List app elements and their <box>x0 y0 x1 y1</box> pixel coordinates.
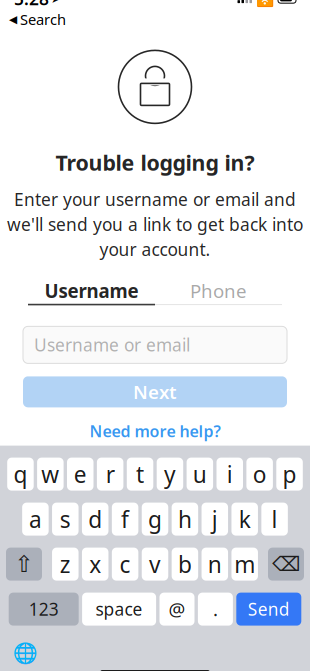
staticText: d <box>88 504 102 534</box>
button[interactable]: n <box>202 548 228 581</box>
staticText: Phone <box>190 278 247 303</box>
staticText: your account. <box>99 238 210 261</box>
staticText: 🌐 <box>12 642 37 665</box>
staticText: b <box>178 549 192 579</box>
staticText: 🛜 <box>256 0 274 7</box>
staticText: p <box>283 459 297 489</box>
staticText: Username or email <box>34 333 190 356</box>
staticText: ⇧ <box>14 551 33 577</box>
staticText: o <box>253 459 267 489</box>
button[interactable]: h <box>172 503 198 536</box>
staticText: Send <box>248 598 290 621</box>
staticText: f <box>121 504 129 534</box>
button[interactable]: p <box>276 458 303 491</box>
button[interactable]: w <box>37 458 64 491</box>
staticText: 5:28 <box>14 0 49 10</box>
button[interactable]: Send <box>236 593 301 626</box>
button[interactable]: Username <box>28 278 155 304</box>
staticText: ⌫ <box>272 553 300 575</box>
button[interactable]: k <box>231 503 258 536</box>
staticText: u <box>193 459 207 489</box>
staticText: j <box>212 504 218 534</box>
button[interactable]: Next <box>23 376 287 407</box>
staticText: v <box>149 549 161 579</box>
staticText: Trouble logging in? <box>55 148 254 177</box>
button[interactable]: space <box>82 593 156 626</box>
staticText: 123 <box>29 598 59 621</box>
button[interactable]: s <box>52 503 79 536</box>
button[interactable]: b <box>172 548 198 581</box>
staticText: a <box>29 504 42 534</box>
button[interactable]: f <box>112 503 138 536</box>
button[interactable]: e <box>67 458 93 491</box>
button[interactable]: a <box>22 503 49 536</box>
staticText: y <box>164 459 176 489</box>
staticText: h <box>178 504 192 534</box>
staticText: c <box>120 549 131 579</box>
staticText: ◀ <box>9 13 17 25</box>
button[interactable]: Delete <box>268 548 304 581</box>
staticText: Need more help? <box>89 420 220 442</box>
staticText: g <box>148 504 162 534</box>
staticText: . <box>213 597 218 621</box>
staticText: Username <box>44 278 138 303</box>
staticText: z <box>60 549 71 579</box>
staticText: x <box>89 549 101 579</box>
button[interactable]: . <box>198 593 233 626</box>
button[interactable]: l <box>261 503 288 536</box>
staticText: m <box>234 549 255 579</box>
staticText: Search <box>20 10 66 29</box>
button[interactable]: Shift <box>6 548 42 581</box>
staticText: s <box>60 504 71 534</box>
staticText: @ <box>168 597 185 621</box>
staticText: we'll send you a link to get back into <box>7 213 303 236</box>
button[interactable]: d <box>82 503 108 536</box>
staticText: Enter your username or email and <box>14 188 296 211</box>
button[interactable]: r <box>97 458 123 491</box>
staticText: l <box>272 504 278 534</box>
button[interactable]: Phone <box>155 278 282 304</box>
button[interactable]: j <box>202 503 228 536</box>
button[interactable]: m <box>231 548 258 581</box>
button[interactable]: t <box>127 458 153 491</box>
button[interactable]: v <box>142 548 168 581</box>
button[interactable]: o <box>246 458 273 491</box>
staticText: n <box>208 549 222 579</box>
staticText: ➤ <box>51 0 61 5</box>
button[interactable]: g <box>142 503 168 536</box>
button[interactable]: @ <box>159 593 194 626</box>
button[interactable]: y <box>157 458 183 491</box>
button[interactable]: z <box>52 548 78 581</box>
button[interactable]: u <box>187 458 213 491</box>
button[interactable]: 123 <box>9 593 79 626</box>
staticText: space <box>96 598 143 621</box>
button[interactable]: q <box>7 458 34 491</box>
staticText: q <box>13 459 27 489</box>
button[interactable]: i <box>216 458 243 491</box>
button[interactable]: Username or email <box>23 326 287 363</box>
button[interactable]: Need more help? <box>79 416 230 446</box>
staticText: Next <box>133 379 177 404</box>
button[interactable]: x <box>82 548 108 581</box>
staticText: t <box>136 459 144 489</box>
staticText: w <box>41 459 59 489</box>
staticText: k <box>239 504 251 534</box>
button[interactable]: ◀ <box>9 10 66 29</box>
staticText: i <box>227 459 233 489</box>
staticText: e <box>74 459 87 489</box>
button[interactable]: c <box>112 548 138 581</box>
button[interactable]: Change keyboard <box>10 641 40 667</box>
staticText: r <box>106 459 115 489</box>
